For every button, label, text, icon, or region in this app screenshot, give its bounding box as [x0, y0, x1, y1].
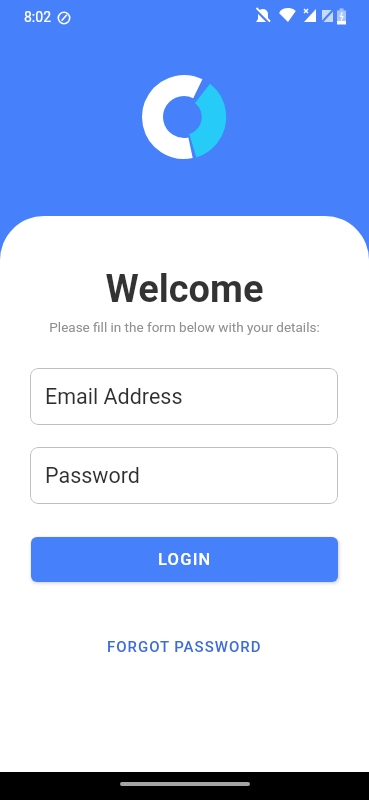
- button[interactable]: Password: [30, 447, 338, 504]
- staticText: Welcome: [0, 267, 369, 312]
- staticText: LOGIN: [158, 550, 212, 569]
- staticText: Please fill in the form below with your …: [0, 319, 369, 335]
- button[interactable]: Email Address: [30, 368, 338, 425]
- staticText: FORGOT PASSWORD: [107, 638, 262, 656]
- button[interactable]: LOGIN: [31, 537, 338, 582]
- staticText: Password: [45, 463, 140, 488]
- button[interactable]: FORGOT PASSWORD: [0, 638, 369, 656]
- staticText: 8:02: [24, 9, 51, 25]
- staticText: Email Address: [45, 384, 183, 409]
